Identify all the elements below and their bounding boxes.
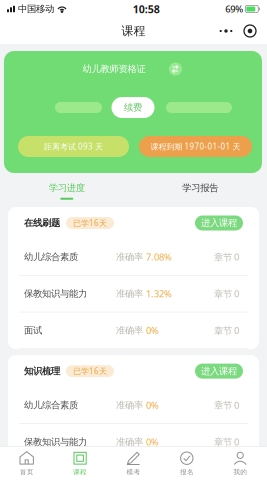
button[interactable]: 进入课程 [195,215,243,230]
staticText: 0% [146,436,159,448]
staticText: 续费 [124,102,142,113]
staticText: 10:58 [133,2,160,16]
button[interactable]: 学习进度 [0,175,133,207]
button[interactable]: 面试 [8,460,259,480]
staticText: 章节 0 [214,399,239,411]
staticText: 中国移动 [18,3,54,15]
staticText: 0% [146,399,159,411]
staticText: 课程 [121,24,145,38]
button[interactable]: 首页 [0,447,53,480]
staticText: 面试 [24,473,42,480]
staticText: 准确率 [116,399,143,411]
button[interactable]: 进入课程 [195,364,243,379]
button[interactable]: 课程 [53,447,107,480]
staticText: 章节 0 [214,324,239,337]
button[interactable]: 幼儿综合素质 [8,387,259,424]
staticText: 保教知识与能力 [24,288,87,299]
staticText: 69% [225,3,243,15]
staticText: 幼儿综合素质 [24,251,78,263]
button[interactable]: 保教知识与能力 [8,424,259,460]
staticText: 准确率 [116,288,143,299]
staticText: 学习进度 [49,182,85,194]
staticText: 距离考试 093 天 [44,141,103,152]
button[interactable]: 学习报告 [133,175,267,207]
button[interactable]: Close [238,20,262,42]
button[interactable]: 报名 [160,447,214,480]
staticText: 幼儿教师资格证 [82,63,145,75]
staticText: 7.08% [146,251,172,263]
staticText: 保教知识与能力 [24,436,87,448]
button[interactable]: 续费 [111,97,154,118]
staticText: 章节 0 [214,251,239,263]
staticText: 报名 [180,468,194,476]
button[interactable]: 面试 [8,312,259,349]
staticText: 进入课程 [201,217,237,229]
button[interactable]: 保教知识与能力 [8,276,259,312]
staticText: 首页 [20,468,34,476]
staticText: 课程到期 1970-01-01 天 [150,141,240,152]
staticText: 1.32% [146,287,172,300]
staticText: 我的 [233,468,247,476]
staticText: 进入课程 [201,365,237,377]
staticText: 0% [146,324,159,337]
button[interactable]: 幼儿综合素质 [8,239,259,276]
staticText: 准确率 [116,436,143,448]
button[interactable]: More [214,20,238,42]
staticText: 学习报告 [182,182,218,194]
staticText: 在线刷题 [24,217,60,229]
staticText: 准确率 [116,251,143,263]
staticText: 已学16天 [73,218,107,228]
staticText: 章节 0 [214,472,239,480]
staticText: 章节 0 [214,287,239,300]
button[interactable]: 我的 [214,447,267,480]
staticText: 准确率 [116,325,143,336]
button[interactable]: 模考 [107,447,160,480]
staticText: 课程 [73,468,87,476]
staticText: 知识梳理 [24,365,60,377]
button[interactable]: Switch course [167,61,183,77]
staticText: 面试 [24,325,42,336]
staticText: 幼儿综合素质 [24,399,78,411]
staticText: 模考 [126,468,140,476]
staticText: 准确率 [116,473,143,480]
staticText: 章节 0 [214,436,239,448]
staticText: 已学16天 [73,366,107,376]
